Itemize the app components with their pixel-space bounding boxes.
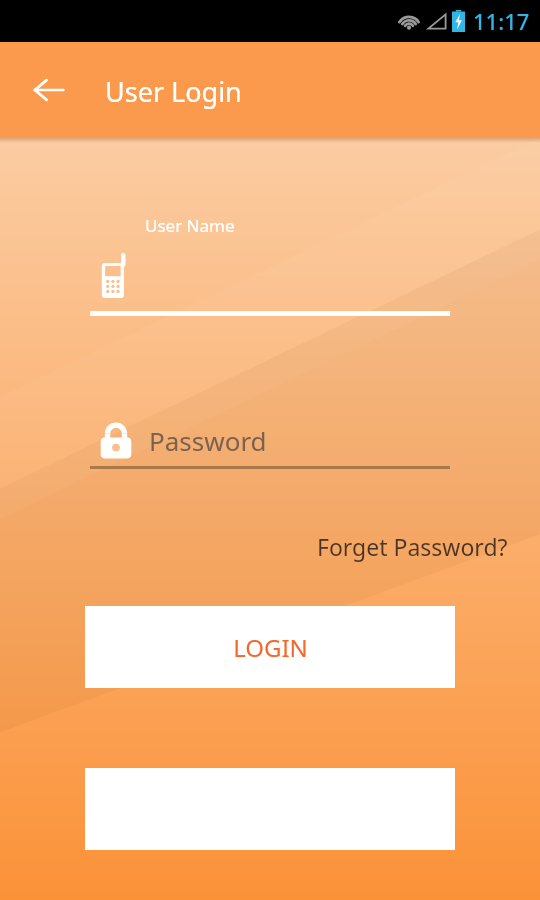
button[interactable]	[0, 253, 540, 311]
staticText: LOGIN	[233, 631, 308, 664]
staticText: User Login	[105, 73, 242, 110]
button[interactable]: LOGIN	[85, 606, 455, 688]
staticText: 11:17	[473, 6, 530, 36]
staticText: User Name	[145, 214, 235, 237]
button[interactable]: Password	[90, 414, 450, 466]
staticText: Forget Password?	[317, 531, 508, 562]
staticText: Password	[149, 423, 267, 458]
button[interactable]: Back	[22, 63, 76, 117]
button[interactable]: Forget Password?	[313, 527, 512, 566]
